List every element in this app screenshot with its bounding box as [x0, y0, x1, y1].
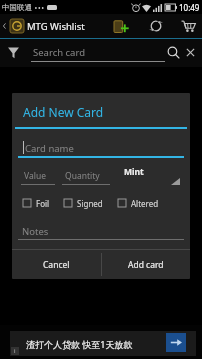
- staticText: Add New Card: [23, 104, 104, 120]
- button[interactable]: Condition: Mint: [118, 165, 180, 185]
- button[interactable]: Navigate up: [0, 18, 10, 34]
- staticText: i: [14, 347, 16, 355]
- button[interactable]: Signed: [64, 195, 122, 211]
- staticText: Value: [24, 170, 46, 182]
- staticText: Cancel: [43, 259, 70, 271]
- staticText: Mint: [124, 166, 144, 178]
- button[interactable]: Open ad: [166, 333, 186, 352]
- staticText: Quantity: [65, 170, 100, 182]
- button[interactable]: Foil: [23, 195, 65, 211]
- button[interactable]: Altered: [118, 195, 178, 211]
- staticText: Altered: [131, 198, 159, 209]
- button[interactable]: Value: [21, 169, 55, 185]
- button[interactable]: Shopping cart: [181, 19, 196, 33]
- staticText: 10:49: [179, 2, 200, 13]
- button[interactable]: 渣打个人贷款 快至1天放款: [10, 331, 196, 356]
- button[interactable]: Search: [167, 46, 180, 59]
- button[interactable]: Quantity: [62, 169, 110, 185]
- button[interactable]: Add card: [102, 250, 190, 279]
- staticText: 中国联通: [2, 3, 32, 12]
- button[interactable]: Cancel: [12, 250, 101, 279]
- staticText: MTG Wishlist: [27, 20, 85, 33]
- button[interactable]: App icon: [10, 19, 24, 33]
- button[interactable]: Add card: [114, 19, 129, 34]
- staticText: Add card: [128, 259, 164, 271]
- staticText: Card name: [25, 142, 74, 155]
- staticText: Search card: [33, 46, 86, 59]
- staticText: Signed: [77, 198, 103, 209]
- button[interactable]: Ad info: [11, 347, 19, 355]
- button[interactable]: Refresh: [149, 19, 163, 33]
- button[interactable]: Clear: [184, 46, 197, 59]
- staticText: Foil: [36, 198, 50, 209]
- button[interactable]: Card name: [18, 141, 184, 158]
- button[interactable]: Search card: [31, 42, 165, 62]
- button[interactable]: Notes: [18, 224, 184, 240]
- staticText: Notes: [22, 225, 49, 238]
- button[interactable]: Filter: [7, 46, 20, 59]
- staticText: 渣打个人贷款 快至1天放款: [26, 338, 133, 350]
